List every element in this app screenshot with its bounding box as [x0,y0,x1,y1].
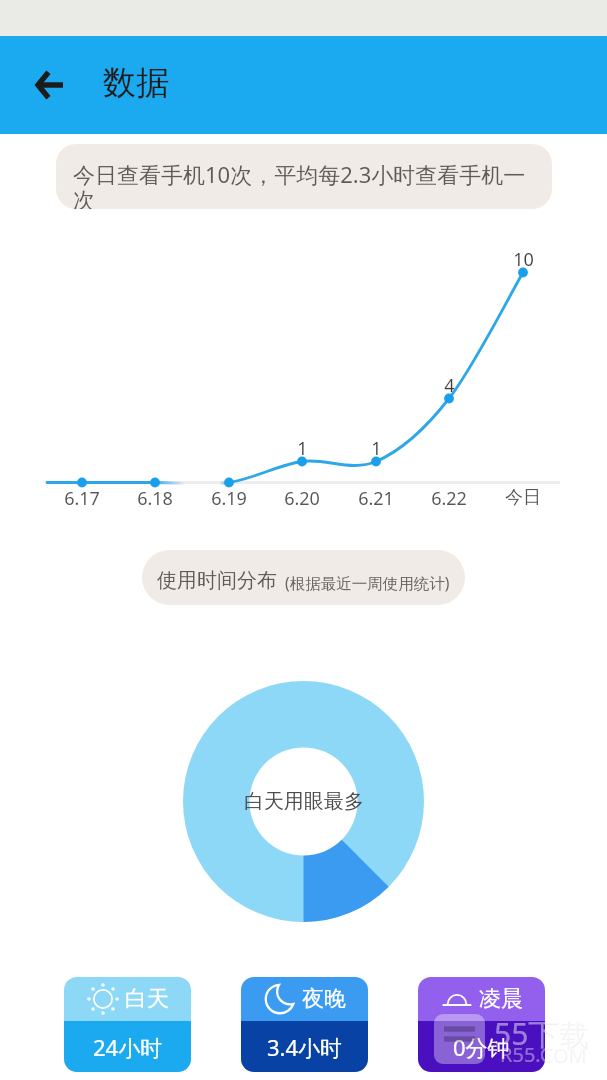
staticText: 数据 [103,62,169,104]
staticText: 4 [444,373,455,398]
staticText: 凌晨 [479,985,523,1013]
staticText: 6.22 [431,486,467,511]
staticText: 夜晚 [302,985,346,1013]
staticText: 今日查看手机10次，平均每2.3小时查看手机一次 [73,159,540,209]
staticText: 6.21 [358,486,394,511]
staticText: 55下载 [495,1014,590,1055]
staticText: 使用时间分布 [157,568,277,593]
staticText: 6.17 [64,486,100,511]
button[interactable]: 夜晚 [241,977,368,1072]
staticText: 1 [297,436,308,461]
staticText: 白天用眼最多 [244,789,364,814]
button[interactable]: Back [22,58,75,111]
staticText: 55下载 [494,1013,589,1054]
staticText: 6.19 [211,486,247,511]
staticText: 1 [371,436,382,461]
button[interactable]: 白天 [64,977,191,1072]
button[interactable]: 凌晨 [418,977,545,1072]
staticText: 白天 [125,985,169,1013]
button[interactable]: 使用时间分布 [142,550,465,605]
staticText: 6.20 [284,486,320,511]
staticText: 6.18 [137,486,173,511]
staticText: 今日 [505,486,541,509]
staticText: 3.4小时 [267,1032,343,1062]
staticText: R55.COM [500,1041,586,1068]
staticText: R55.COM [501,1042,587,1069]
staticText: 10 [513,247,534,272]
staticText: (根据最近一周使用统计) [285,572,450,593]
staticText: 0分钟 [453,1032,510,1062]
staticText: 24小时 [93,1032,163,1062]
